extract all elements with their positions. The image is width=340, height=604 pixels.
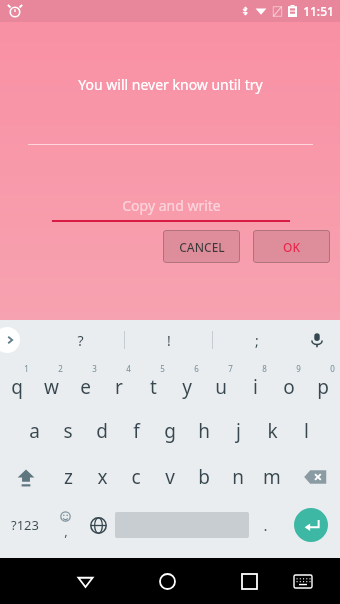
staticText: n: [232, 464, 244, 490]
button[interactable]: v: [153, 454, 187, 500]
staticText: w: [44, 374, 59, 400]
button[interactable]: x: [85, 454, 119, 500]
staticText: ?123: [11, 516, 39, 534]
button[interactable]: 3: [68, 360, 102, 408]
staticText: ?: [77, 331, 84, 350]
button[interactable]: h: [187, 408, 221, 454]
button[interactable]: Emoji: [49, 500, 82, 550]
staticText: h: [198, 418, 210, 444]
button[interactable]: b: [187, 454, 221, 500]
staticText: i: [253, 374, 258, 400]
staticText: b: [198, 464, 210, 490]
staticText: y: [182, 374, 192, 400]
staticText: 3: [92, 363, 97, 374]
staticText: !: [167, 331, 171, 350]
button[interactable]: k: [255, 408, 289, 454]
staticText: v: [165, 464, 175, 490]
button[interactable]: ;: [213, 320, 301, 360]
button[interactable]: CANCEL: [163, 230, 240, 263]
staticText: ;: [255, 331, 259, 350]
staticText: 7: [228, 363, 233, 374]
button[interactable]: l: [289, 408, 323, 454]
button[interactable]: 0: [306, 360, 340, 408]
staticText: j: [236, 418, 241, 444]
staticText: q: [11, 374, 23, 400]
staticText: c: [131, 464, 141, 490]
button[interactable]: Back: [59, 558, 112, 604]
button[interactable]: Change language: [82, 500, 115, 550]
button[interactable]: j: [221, 408, 255, 454]
staticText: You will never know until try: [78, 75, 263, 94]
button[interactable]: ?123: [0, 500, 49, 550]
staticText: 1: [24, 363, 29, 374]
button[interactable]: 9: [272, 360, 306, 408]
button[interactable]: g: [153, 408, 187, 454]
staticText: p: [317, 374, 329, 400]
button[interactable]: Home: [141, 558, 194, 604]
staticText: Copy and write: [122, 196, 221, 215]
staticText: 11:51: [303, 3, 334, 19]
staticText: g: [164, 418, 176, 444]
staticText: 6: [194, 363, 199, 374]
button[interactable]: Copy and write: [52, 196, 290, 222]
staticText: t: [150, 374, 157, 400]
staticText: a: [29, 418, 40, 444]
button[interactable]: !: [125, 320, 213, 360]
button[interactable]: Shift: [0, 454, 51, 500]
staticText: f: [133, 418, 140, 444]
button[interactable]: ?: [36, 320, 125, 360]
staticText: CANCEL: [179, 239, 225, 255]
staticText: m: [263, 464, 281, 490]
button[interactable]: 4: [102, 360, 136, 408]
staticText: s: [63, 418, 73, 444]
button[interactable]: .: [249, 500, 282, 550]
staticText: .: [263, 515, 268, 535]
staticText: r: [115, 374, 123, 400]
staticText: 5: [160, 363, 165, 374]
button[interactable]: Keyboard: [276, 558, 329, 604]
button[interactable]: 6: [170, 360, 204, 408]
button[interactable]: 8: [238, 360, 272, 408]
button[interactable]: 1: [0, 360, 34, 408]
staticText: u: [215, 374, 227, 400]
staticText: z: [64, 464, 73, 490]
button[interactable]: c: [119, 454, 153, 500]
staticText: e: [80, 374, 91, 400]
button[interactable]: Voice input: [304, 327, 330, 353]
staticText: 0: [330, 363, 335, 374]
button[interactable]: s: [51, 408, 85, 454]
staticText: 9: [296, 363, 301, 374]
staticText: x: [97, 464, 108, 490]
button[interactable]: m: [255, 454, 289, 500]
button[interactable]: 2: [34, 360, 68, 408]
button[interactable]: Backspace: [289, 454, 340, 500]
button[interactable]: 7: [204, 360, 238, 408]
button[interactable]: Recents: [223, 558, 276, 604]
button[interactable]: d: [85, 408, 119, 454]
button[interactable]: Enter: [282, 500, 340, 550]
staticText: k: [267, 418, 278, 444]
staticText: o: [283, 374, 295, 400]
button[interactable]: 5: [136, 360, 170, 408]
button[interactable]: f: [119, 408, 153, 454]
button[interactable]: z: [51, 454, 85, 500]
staticText: l: [304, 418, 309, 444]
staticText: d: [96, 418, 108, 444]
button[interactable]: n: [221, 454, 255, 500]
button[interactable]: a: [17, 408, 51, 454]
button[interactable]: OK: [253, 230, 330, 263]
staticText: ,: [64, 522, 68, 540]
staticText: 8: [262, 363, 267, 374]
staticText: OK: [283, 239, 300, 255]
button[interactable]: Expand suggestions: [0, 327, 20, 353]
staticText: 4: [126, 363, 131, 374]
staticText: 2: [58, 363, 63, 374]
